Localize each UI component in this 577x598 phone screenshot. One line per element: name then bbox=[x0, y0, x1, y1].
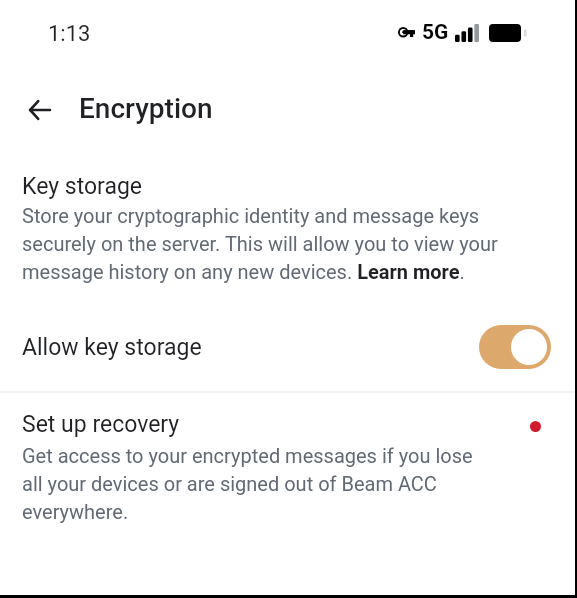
button[interactable]: Allow key storage bbox=[0, 324, 577, 370]
staticText: Allow key storage bbox=[22, 334, 202, 361]
button[interactable]: Set up recovery bbox=[0, 411, 577, 525]
staticText: 5G bbox=[422, 22, 449, 44]
button[interactable]: Back bbox=[17, 87, 62, 132]
staticText: Set up recovery bbox=[22, 411, 180, 438]
staticText: Key storage bbox=[22, 173, 143, 200]
staticText: 1:13 bbox=[48, 21, 91, 47]
button[interactable]: Allow key storage bbox=[479, 325, 551, 369]
staticText: Encryption bbox=[79, 93, 213, 125]
staticText: Store your cryptographic identity and me… bbox=[22, 201, 507, 285]
staticText: Get access to your encrypted messages if… bbox=[22, 441, 492, 525]
